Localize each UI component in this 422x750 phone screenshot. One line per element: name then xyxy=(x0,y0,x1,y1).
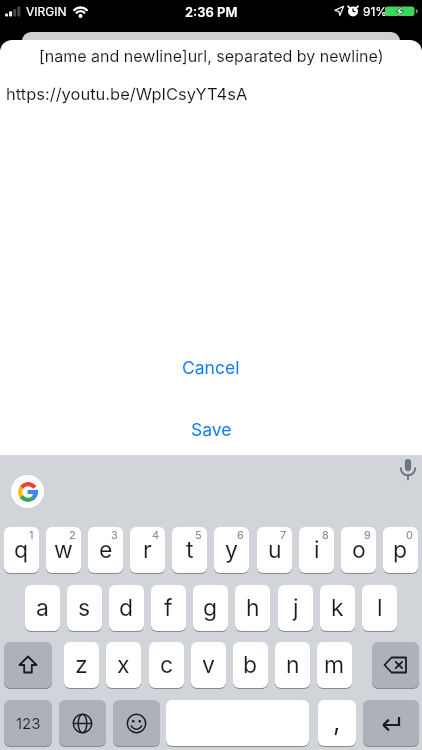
staticText: g xyxy=(203,594,218,622)
staticText: 8 xyxy=(322,528,329,541)
staticText: t xyxy=(186,536,194,564)
staticText: 2 xyxy=(69,528,76,541)
button[interactable]: k xyxy=(320,585,355,631)
staticText: h xyxy=(246,594,260,622)
staticText: f xyxy=(164,594,173,622)
button[interactable]: l xyxy=(362,585,397,631)
button[interactable] xyxy=(166,700,309,746)
staticText: d xyxy=(119,594,134,622)
button[interactable]: x xyxy=(106,642,141,688)
staticText: x xyxy=(117,651,130,679)
staticText: 0 xyxy=(406,528,413,541)
staticText: z xyxy=(75,651,88,679)
staticText: 7 xyxy=(280,528,287,541)
staticText: 2:36 PM xyxy=(185,4,238,20)
button[interactable] xyxy=(400,459,416,481)
button[interactable]: d xyxy=(109,585,144,631)
staticText: https://youtu.be/WpICsyYT4sA xyxy=(6,84,248,104)
staticText: w xyxy=(54,536,73,564)
staticText: y xyxy=(225,536,238,564)
button[interactable] xyxy=(4,642,52,688)
staticText: 4 xyxy=(152,528,160,541)
button[interactable] xyxy=(11,475,44,508)
staticText: a xyxy=(36,594,49,622)
button[interactable]: h xyxy=(235,585,270,631)
staticText: Cancel xyxy=(182,357,240,378)
staticText: o xyxy=(352,536,366,564)
button[interactable]: Save xyxy=(191,419,232,440)
button[interactable]: q xyxy=(4,527,39,573)
button[interactable]: r xyxy=(130,527,165,573)
staticText: 123 xyxy=(16,714,41,732)
staticText: j xyxy=(293,594,299,622)
button[interactable]: w xyxy=(46,527,81,573)
button[interactable]: n xyxy=(275,642,310,688)
staticText: , xyxy=(333,706,341,737)
staticText: v xyxy=(202,651,215,679)
button[interactable]: z xyxy=(64,642,99,688)
staticText: p xyxy=(393,536,408,564)
button[interactable]: e xyxy=(88,527,123,573)
staticText: q xyxy=(14,536,29,564)
staticText: u xyxy=(268,536,282,564)
staticText: c xyxy=(160,651,174,679)
button[interactable] xyxy=(59,700,106,746)
button[interactable]: v xyxy=(191,642,226,688)
staticText: b xyxy=(243,651,258,679)
button[interactable]: o xyxy=(341,527,376,573)
staticText: 3 xyxy=(111,528,118,541)
button[interactable]: f xyxy=(151,585,186,631)
button[interactable]: g xyxy=(193,585,228,631)
button[interactable]: p xyxy=(383,527,418,573)
staticText: l xyxy=(377,594,383,622)
button[interactable] xyxy=(363,700,419,746)
button[interactable]: , xyxy=(318,700,356,746)
staticText: 1 xyxy=(29,528,34,541)
button[interactable]: t xyxy=(172,527,207,573)
staticText: k xyxy=(331,594,344,622)
button[interactable]: c xyxy=(149,642,184,688)
staticText: 5 xyxy=(195,528,202,541)
button[interactable]: b xyxy=(233,642,268,688)
button[interactable]: a xyxy=(25,585,60,631)
button[interactable]: u xyxy=(257,527,292,573)
staticText: VIRGIN xyxy=(26,4,67,19)
staticText: 9 xyxy=(364,528,371,541)
staticText: i xyxy=(314,536,320,564)
button[interactable]: y xyxy=(214,527,249,573)
button[interactable] xyxy=(113,700,160,746)
button[interactable]: j xyxy=(278,585,313,631)
staticText: 6 xyxy=(237,528,244,541)
staticText: e xyxy=(99,536,113,564)
button[interactable]: 123 xyxy=(4,700,52,746)
staticText: m xyxy=(324,651,345,679)
staticText: n xyxy=(286,651,300,679)
staticText: r xyxy=(143,536,152,564)
staticText: 91% xyxy=(363,4,388,19)
button[interactable]: s xyxy=(67,585,102,631)
button[interactable]: i xyxy=(299,527,334,573)
staticText: s xyxy=(78,594,91,622)
staticText: [name and newline]url, separated by newl… xyxy=(39,46,384,65)
staticText: Save xyxy=(191,419,232,440)
button[interactable]: Cancel xyxy=(182,357,240,378)
button[interactable]: m xyxy=(317,642,352,688)
button[interactable] xyxy=(372,642,419,688)
